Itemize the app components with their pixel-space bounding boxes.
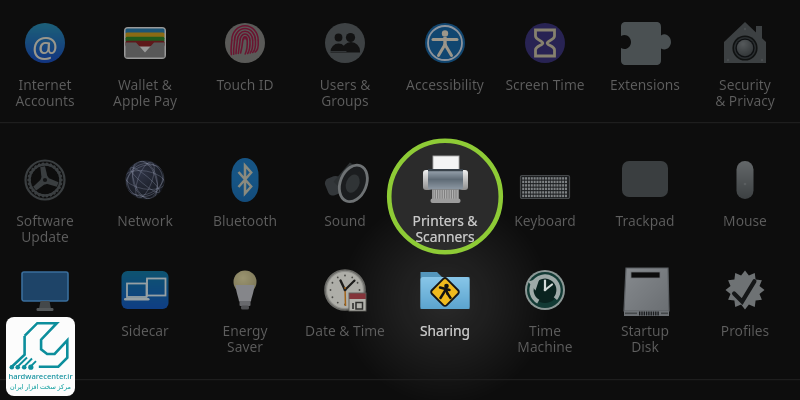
button[interactable]: Security & Privacy	[695, 7, 795, 99]
button[interactable]: Displays	[0, 254, 95, 346]
staticText: Mouse	[695, 211, 795, 230]
staticText: مرکز سخت افزار ایران	[6, 382, 75, 391]
staticText: Sidecar	[95, 321, 195, 340]
button[interactable]: Software Update	[0, 144, 95, 236]
button[interactable]: hardwarecenter.ir	[6, 317, 75, 396]
button[interactable]: Sound	[295, 144, 395, 236]
button[interactable]: Keyboard	[495, 144, 595, 236]
staticText: Sound	[295, 211, 395, 230]
button[interactable]: Trackpad	[595, 144, 695, 236]
staticText: Startup Disk	[595, 321, 695, 356]
button[interactable]: Extensions	[595, 7, 695, 99]
staticText: Touch ID	[195, 75, 295, 94]
staticText: Bluetooth	[195, 211, 295, 230]
button[interactable]: Mouse	[695, 144, 795, 236]
button[interactable]: Sidecar	[95, 254, 195, 346]
button[interactable]: Internet Accounts	[0, 7, 95, 99]
staticText: Sharing	[395, 321, 495, 340]
staticText: Users & Groups	[295, 75, 395, 110]
button[interactable]: Bluetooth	[195, 144, 295, 236]
staticText: Date & Time	[295, 321, 395, 340]
staticText: Software Update	[0, 211, 95, 246]
staticText: Wallet & Apple Pay	[95, 75, 195, 110]
button[interactable]: Touch ID	[195, 7, 295, 99]
button[interactable]: Network	[95, 144, 195, 236]
staticText: Trackpad	[595, 211, 695, 230]
staticText: Screen Time	[495, 75, 595, 94]
staticText: Network	[95, 211, 195, 230]
staticText: Internet Accounts	[0, 75, 95, 110]
button[interactable]: Energy Saver	[195, 254, 295, 346]
button[interactable]: Printers & Scanners	[395, 144, 495, 236]
staticText: Profiles	[695, 321, 795, 340]
staticText: Displays	[0, 321, 95, 340]
staticText: Keyboard	[495, 211, 595, 230]
button[interactable]: Users & Groups	[295, 7, 395, 99]
button[interactable]: Screen Time	[495, 7, 595, 99]
button[interactable]: Wallet & Apple Pay	[95, 7, 195, 99]
button[interactable]: Time Machine	[495, 254, 595, 346]
staticText: Time Machine	[495, 321, 595, 356]
staticText: Energy Saver	[195, 321, 295, 356]
staticText: Extensions	[595, 75, 695, 94]
staticText: Accessibility	[395, 75, 495, 94]
button[interactable]: Date & Time	[295, 254, 395, 346]
staticText: Security & Privacy	[695, 75, 795, 110]
button[interactable]: Startup Disk	[595, 254, 695, 346]
button[interactable]: Accessibility	[395, 7, 495, 99]
staticText: @	[0, 27, 90, 66]
button[interactable]: Sharing	[395, 254, 495, 346]
staticText: Printers & Scanners	[395, 211, 495, 246]
button[interactable]: Profiles	[695, 254, 795, 346]
staticText: hardwarecenter.ir	[6, 371, 75, 381]
